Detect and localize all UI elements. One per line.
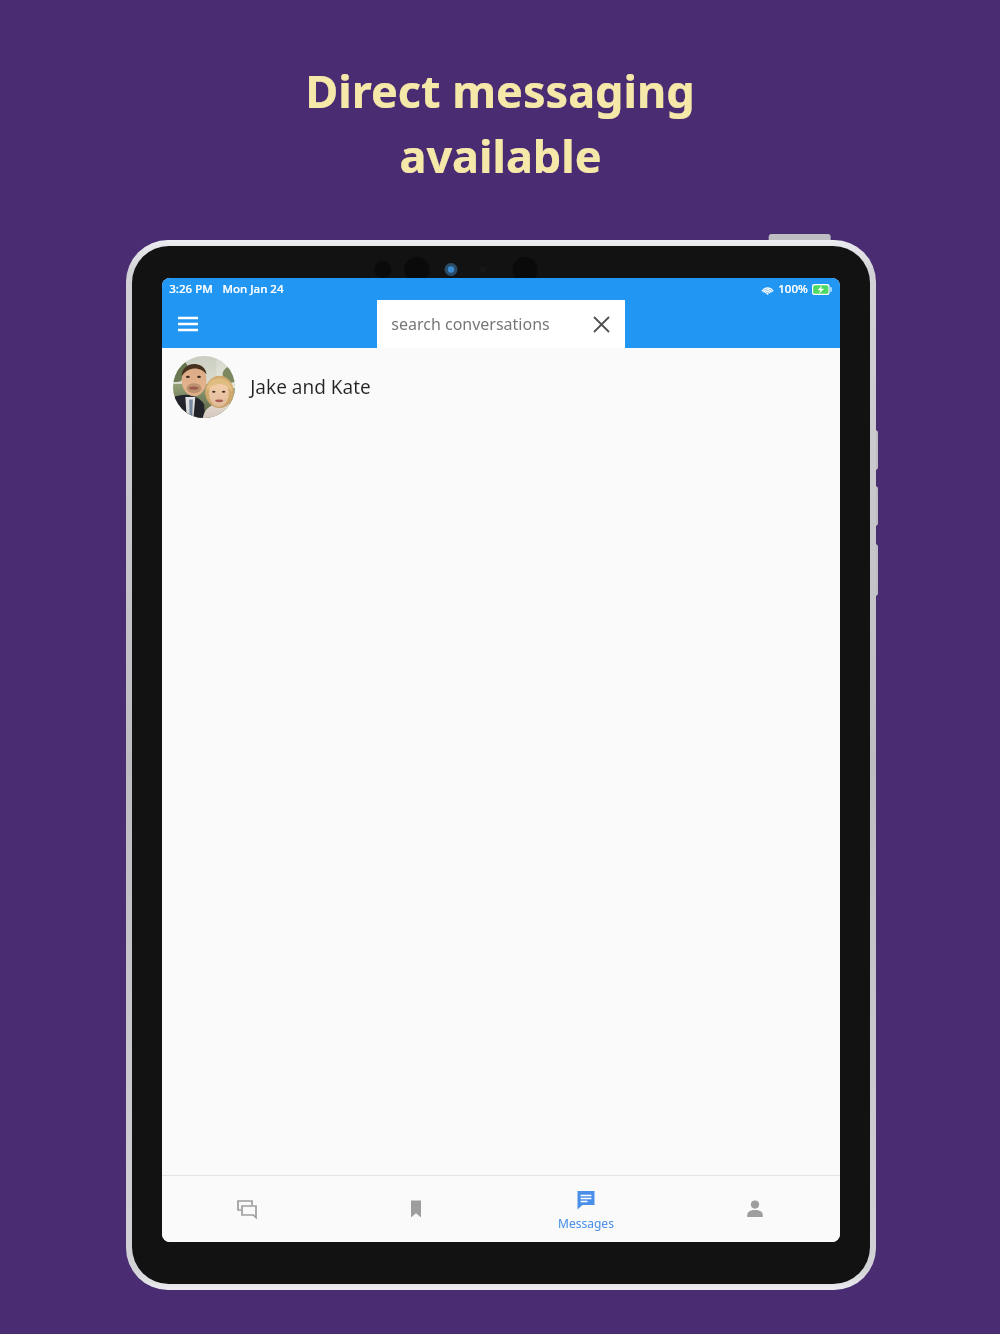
button[interactable]: Clear search — [586, 309, 616, 339]
button[interactable]: Messages — [506, 1176, 666, 1242]
staticText: Mon Jan 24 — [222, 281, 284, 297]
button[interactable]: Profile — [675, 1176, 835, 1242]
button[interactable]: Jake and Kate — [162, 348, 840, 426]
staticText: 3:26 PM — [169, 281, 213, 297]
button[interactable]: search conversations — [377, 300, 625, 348]
staticText: search conversations — [391, 313, 550, 335]
button[interactable]: Conversations — [167, 1176, 327, 1242]
staticText: 100% — [778, 281, 808, 297]
button[interactable]: Saved — [336, 1176, 496, 1242]
staticText: Jake and Kate — [250, 374, 371, 400]
button[interactable]: Open navigation menu — [168, 304, 208, 344]
staticText: Messages — [558, 1215, 614, 1231]
staticText: Direct messaging — [305, 60, 695, 121]
staticText: available — [399, 125, 602, 186]
